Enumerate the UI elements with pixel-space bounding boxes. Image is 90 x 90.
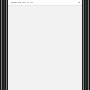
button[interactable]: More options [8, 0, 82, 5]
